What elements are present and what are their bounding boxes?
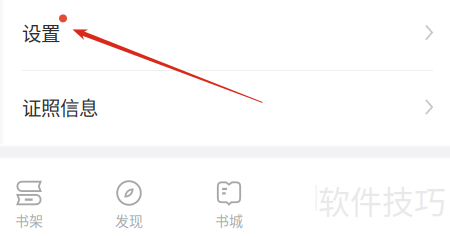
- button[interactable]: 书城: [179, 159, 279, 237]
- staticText: 证照信息: [22, 93, 98, 121]
- staticText: 发现: [115, 210, 143, 230]
- staticText: 书城: [215, 210, 243, 230]
- staticText: 书架: [15, 210, 43, 230]
- button[interactable]: 发现: [79, 159, 179, 237]
- button[interactable]: 书架: [0, 159, 79, 237]
- button[interactable]: 设置: [0, 0, 450, 70]
- staticText: 软件技巧: [318, 177, 446, 223]
- staticText: 设置: [22, 18, 60, 47]
- button[interactable]: 证照信息: [0, 71, 450, 145]
